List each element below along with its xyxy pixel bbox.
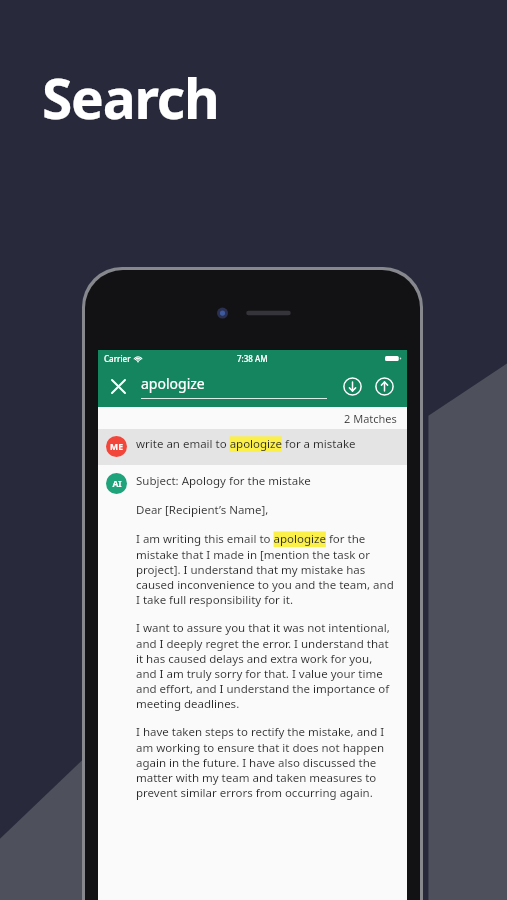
staticText: write an email to apologize for a mistak… xyxy=(136,436,356,452)
button[interactable]: Previous match xyxy=(371,373,398,400)
staticText: Carrier xyxy=(104,353,131,364)
staticText: I have taken steps to rectify the mistak… xyxy=(136,724,395,800)
staticText: 7:38 AM xyxy=(237,353,268,364)
staticText: 2 Matches xyxy=(344,411,397,426)
staticText: I am writing this email to apologize for… xyxy=(136,531,395,607)
button[interactable]: ME xyxy=(98,429,407,465)
staticText: Dear [Recipient’s Name], xyxy=(136,502,269,518)
staticText: Search xyxy=(42,60,219,135)
staticText: apologize xyxy=(141,374,205,393)
staticText: AI xyxy=(112,478,122,490)
staticText: I want to assure you that it was not int… xyxy=(136,620,395,711)
button[interactable]: AI xyxy=(98,465,407,800)
button[interactable]: Next match xyxy=(339,373,366,400)
button[interactable]: apologize xyxy=(141,374,327,399)
staticText: Subject: Apology for the mistake xyxy=(136,473,311,489)
staticText: ME xyxy=(110,441,123,453)
button[interactable]: Close search xyxy=(98,366,139,407)
